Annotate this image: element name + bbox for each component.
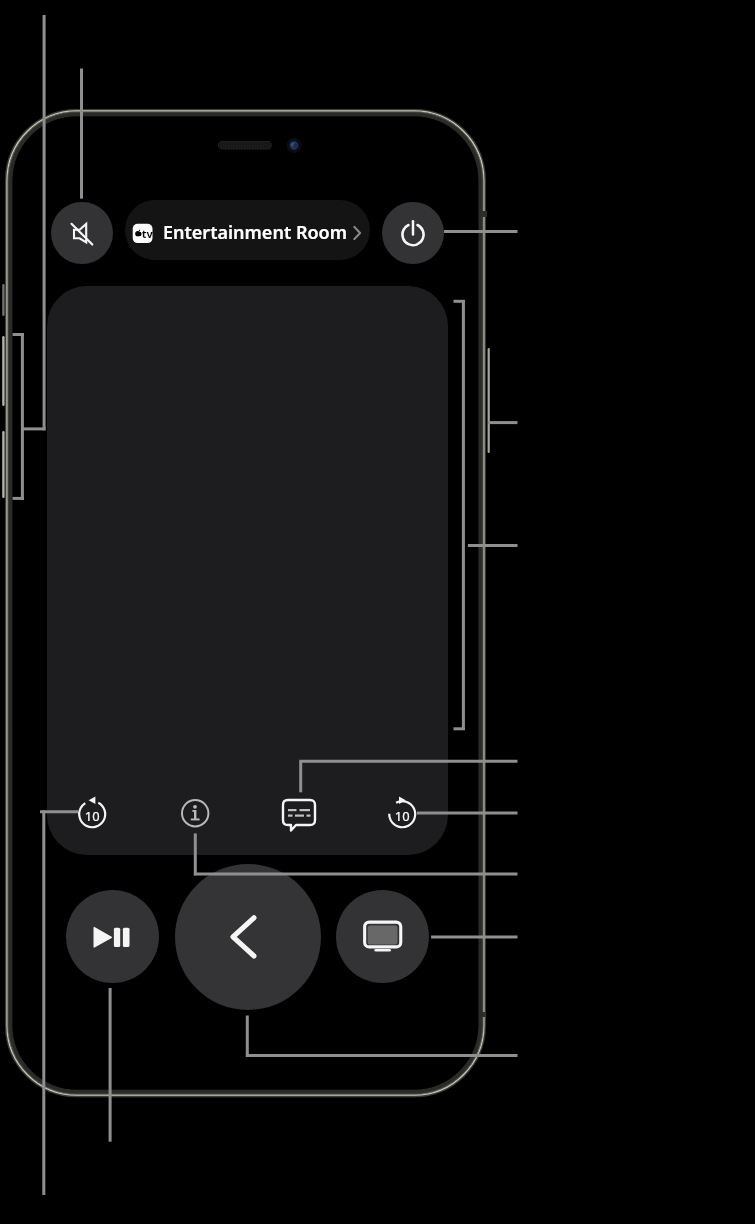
- button[interactable]: Power: [382, 202, 444, 264]
- button[interactable]: Info: [181, 799, 209, 827]
- button[interactable]: Touch surface: [47, 286, 448, 855]
- button[interactable]: Mute: [51, 202, 113, 264]
- button[interactable]: Subtitles: [283, 798, 315, 830]
- button[interactable]: [125, 200, 370, 260]
- button[interactable]: Apple TV app: [336, 890, 429, 983]
- button[interactable]: Skip forward 10 seconds: [388, 800, 416, 828]
- button[interactable]: Play or pause: [66, 890, 159, 983]
- button[interactable]: Skip back 10 seconds: [78, 800, 106, 828]
- button[interactable]: Back: [175, 864, 321, 1010]
